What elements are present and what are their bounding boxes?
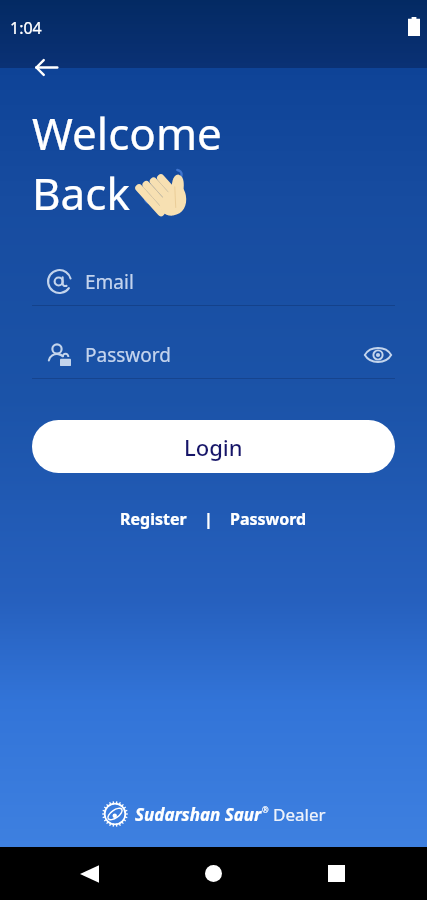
button[interactable]: Password xyxy=(32,331,395,378)
button[interactable]: Show password xyxy=(361,338,395,372)
staticText: Password xyxy=(85,342,171,368)
staticText: Back xyxy=(32,163,130,223)
button[interactable]: Home xyxy=(190,850,237,897)
button[interactable]: Password xyxy=(228,504,309,534)
staticText: Email xyxy=(85,269,134,295)
staticText: Dealer xyxy=(273,803,326,826)
button[interactable]: Back xyxy=(25,46,67,88)
staticText: | xyxy=(204,508,213,530)
staticText: Login xyxy=(184,432,243,462)
button[interactable]: Recent apps xyxy=(313,850,360,897)
button[interactable]: Register xyxy=(118,504,189,534)
button[interactable]: Email xyxy=(32,258,395,305)
staticText: 1:04 xyxy=(10,17,42,39)
button[interactable]: Login xyxy=(32,420,395,473)
staticText: Sudarshan Saur xyxy=(135,803,262,826)
staticText: ® xyxy=(262,804,269,815)
button[interactable]: Back xyxy=(66,850,113,897)
staticText: Register xyxy=(120,508,187,530)
staticText: Welcome xyxy=(32,103,222,163)
staticText: Password xyxy=(230,508,307,530)
